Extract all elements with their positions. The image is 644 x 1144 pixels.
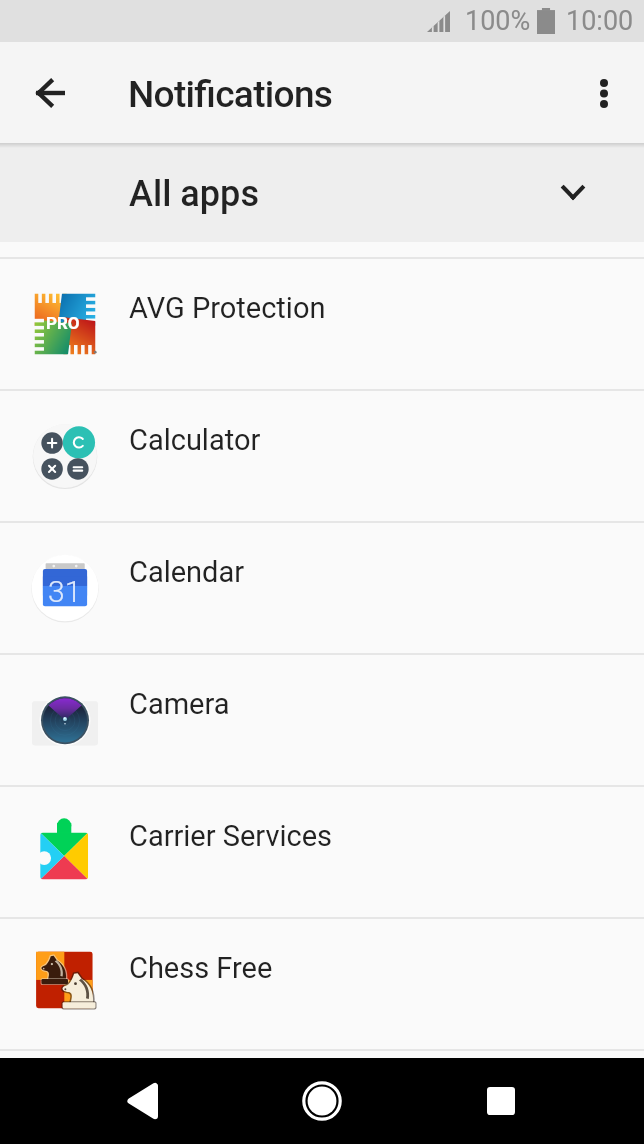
staticText: 10:00 — [566, 5, 634, 37]
staticText: All apps — [129, 173, 259, 215]
button[interactable]: More options — [576, 65, 632, 121]
staticText: Chess Free — [129, 951, 273, 985]
button[interactable]: PRO — [0, 259, 644, 389]
button[interactable]: Carrier Services — [0, 787, 644, 917]
button[interactable]: 31 — [0, 523, 644, 653]
staticText: Calendar — [129, 555, 245, 589]
staticText: 31 — [48, 574, 82, 609]
button[interactable]: Recent apps — [456, 1058, 546, 1144]
staticText: Carrier Services — [129, 819, 333, 853]
button[interactable]: Camera — [0, 655, 644, 785]
button[interactable]: Back — [98, 1058, 188, 1144]
button[interactable]: Calculator — [0, 391, 644, 521]
staticText: AVG Protection — [129, 291, 326, 325]
staticText: PRO — [46, 313, 80, 333]
button[interactable]: Chess Free — [0, 919, 644, 1049]
staticText: 100% — [465, 5, 531, 37]
button[interactable]: All apps — [0, 143, 644, 242]
staticText: Calculator — [129, 423, 261, 457]
staticText: Notifications — [128, 73, 333, 116]
staticText: Camera — [129, 687, 230, 721]
button[interactable]: Home — [277, 1058, 367, 1144]
button[interactable]: Navigate up — [21, 64, 79, 122]
